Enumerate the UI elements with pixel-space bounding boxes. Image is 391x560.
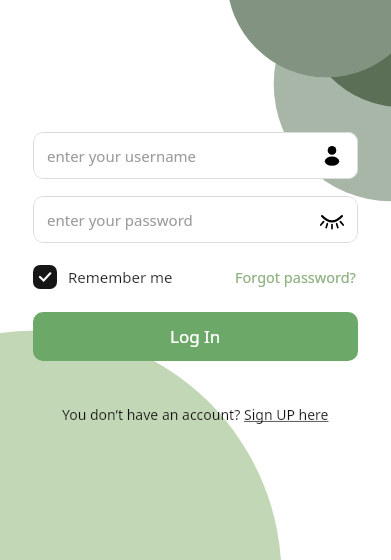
staticText: Sign UP here xyxy=(244,405,329,424)
button[interactable]: Show password xyxy=(318,206,346,234)
staticText: enter your password xyxy=(47,210,193,230)
staticText: enter your username xyxy=(47,146,197,166)
button[interactable]: Remember me xyxy=(33,263,173,291)
button[interactable]: Sign UP here xyxy=(244,405,329,424)
button[interactable]: enter your password xyxy=(33,196,358,243)
staticText: You don’t have an account? xyxy=(62,405,244,424)
button[interactable]: Forgot password? xyxy=(233,265,358,289)
staticText: Log In xyxy=(170,325,221,348)
staticText: Forgot password? xyxy=(235,267,356,287)
button[interactable]: enter your username xyxy=(33,132,358,179)
button[interactable]: Log In xyxy=(33,312,358,361)
button[interactable]: Username xyxy=(318,142,346,170)
staticText: Remember me xyxy=(68,267,173,287)
